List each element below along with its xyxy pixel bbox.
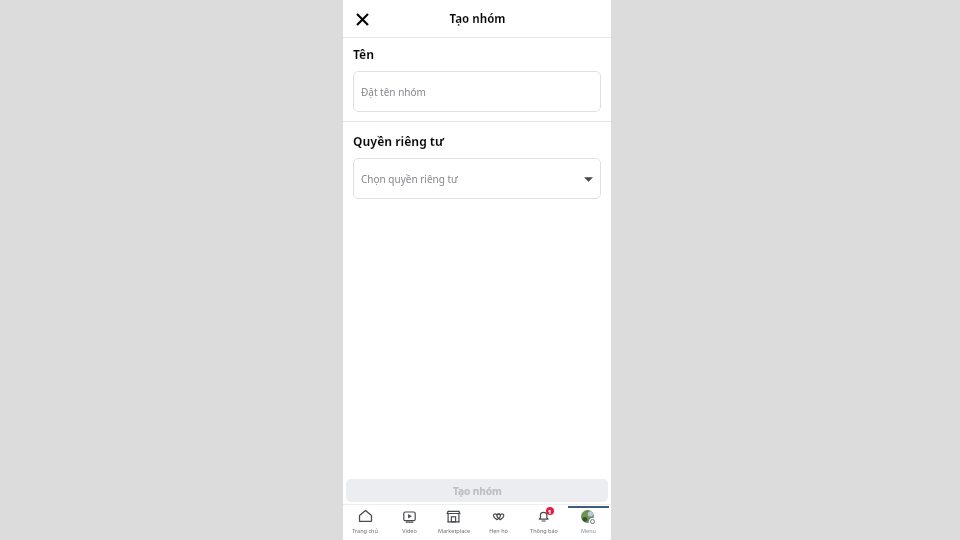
staticText: Video xyxy=(402,527,417,534)
staticText: Tạo nhóm xyxy=(453,484,502,498)
staticText: Quyền riêng tư xyxy=(353,133,445,149)
staticText: Trang chủ xyxy=(352,527,378,534)
button[interactable]: 1 xyxy=(521,506,566,540)
button[interactable]: Video xyxy=(387,506,431,540)
staticText: Đặt tên nhóm xyxy=(361,85,426,99)
button[interactable]: Close xyxy=(346,3,378,35)
button[interactable]: Trang chủ xyxy=(343,506,387,540)
staticText: Marketplace xyxy=(438,527,470,534)
staticText: Menu xyxy=(581,527,596,534)
staticText: Chọn quyền riêng tư xyxy=(361,172,458,186)
staticText: 1 xyxy=(548,508,552,515)
button[interactable]: Tạo nhóm xyxy=(346,479,608,502)
staticText: Hẹn hò xyxy=(489,527,508,534)
staticText: Thông báo xyxy=(530,527,558,534)
staticText: Tạo nhóm xyxy=(449,11,506,27)
button[interactable]: Menu xyxy=(566,506,611,540)
staticText: Tên xyxy=(353,46,375,62)
button[interactable]: Marketplace xyxy=(431,506,476,540)
button[interactable]: Hẹn hò xyxy=(476,506,521,540)
button[interactable]: Đặt tên nhóm xyxy=(353,71,601,112)
button[interactable]: Chọn quyền riêng tư xyxy=(353,158,601,199)
